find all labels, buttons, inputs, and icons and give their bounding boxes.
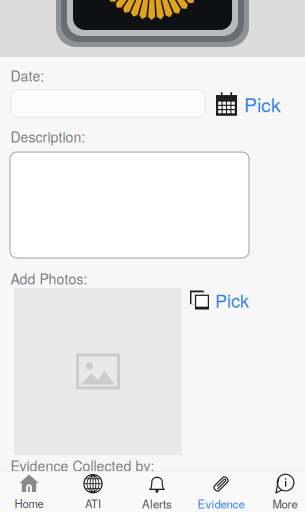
staticText: Alerts <box>142 495 172 512</box>
staticText: Evidence <box>197 495 244 512</box>
button[interactable]: Pick <box>190 289 254 311</box>
button[interactable]: Alerts <box>126 474 187 512</box>
staticText: Pick <box>215 287 249 313</box>
button[interactable]: More <box>254 474 305 512</box>
button[interactable]: Evidence <box>190 474 251 512</box>
staticText: Description: <box>10 126 85 146</box>
button[interactable]: Pick <box>216 90 290 118</box>
staticText: Pick <box>244 90 281 118</box>
staticText: ATI <box>85 495 101 512</box>
button[interactable]: ATI <box>62 474 123 512</box>
staticText: Evidence Collected by: <box>10 455 154 475</box>
staticText: Home <box>14 495 43 511</box>
button[interactable]: Home <box>0 474 59 512</box>
staticText: Date: <box>10 65 44 85</box>
staticText: Add Photos: <box>10 268 87 288</box>
staticText: More <box>272 495 297 512</box>
